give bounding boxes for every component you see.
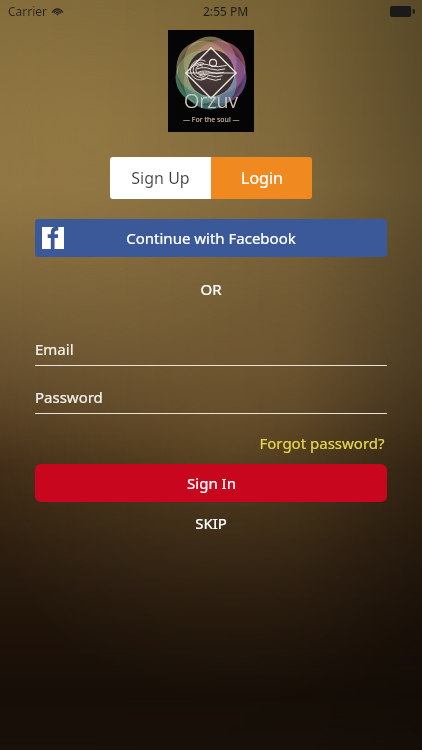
staticText: Email: [35, 339, 74, 359]
staticText: — For the soul —: [183, 115, 240, 125]
button[interactable]: Continue with Facebook: [35, 219, 387, 257]
staticText: OR: [200, 279, 222, 299]
staticText: Sign Up: [131, 167, 190, 189]
button[interactable]: Sign In: [35, 464, 387, 502]
button[interactable]: Password: [35, 387, 387, 414]
staticText: Sign In: [187, 473, 236, 493]
staticText: Carrier: [8, 3, 48, 19]
staticText: SKIP: [195, 513, 227, 533]
staticText: 2:55 PM: [203, 3, 249, 19]
staticText: Forgot password?: [259, 433, 385, 453]
button[interactable]: Sign Up: [110, 157, 211, 199]
staticText: Orzuv: [184, 87, 238, 114]
button[interactable]: Forgot password?: [257, 431, 387, 455]
button[interactable]: Email: [35, 339, 387, 366]
button[interactable]: SKIP: [191, 509, 231, 537]
other: Facebook: [42, 227, 64, 249]
staticText: Password: [35, 387, 103, 407]
staticText: Continue with Facebook: [126, 228, 296, 248]
button[interactable]: Login: [211, 157, 312, 199]
staticText: Login: [241, 167, 283, 189]
